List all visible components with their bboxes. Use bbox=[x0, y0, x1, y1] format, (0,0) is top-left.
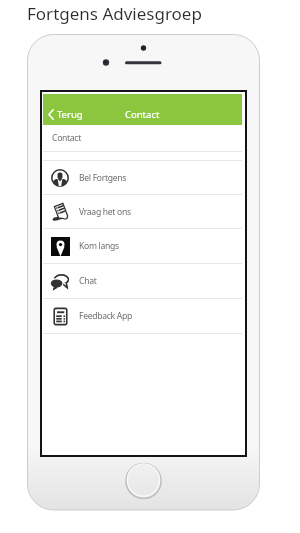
staticText: Kom langs bbox=[79, 240, 119, 252]
button[interactable]: Feedback App bbox=[43, 299, 242, 334]
staticText: Fortgens Adviesgroep bbox=[27, 2, 202, 25]
staticText: Terug bbox=[57, 108, 83, 121]
staticText: Vraag het ons bbox=[79, 206, 131, 218]
button[interactable]: Kom langs bbox=[43, 229, 242, 264]
button[interactable]: Vraag het ons bbox=[43, 195, 242, 229]
staticText: Bel Fortgens bbox=[79, 172, 127, 184]
button[interactable]: Bel Fortgens bbox=[43, 161, 242, 195]
staticText: Chat bbox=[79, 275, 97, 287]
button[interactable]: Terug bbox=[46, 104, 85, 125]
button[interactable]: Chat bbox=[43, 264, 242, 299]
staticText: Feedback App bbox=[79, 310, 132, 322]
staticText: Contact bbox=[52, 132, 81, 144]
staticText: Contact bbox=[125, 108, 160, 121]
